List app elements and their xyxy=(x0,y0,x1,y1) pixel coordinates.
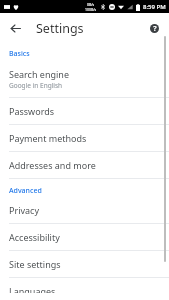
staticText: Addresses and more xyxy=(9,159,96,171)
staticText: ? xyxy=(153,24,157,33)
staticText: Site settings xyxy=(9,258,61,270)
staticText: 100B/s xyxy=(85,7,97,12)
staticText: 0B/s xyxy=(87,2,95,7)
staticText: Advanced xyxy=(9,186,42,196)
staticText: Settings xyxy=(36,20,84,37)
staticText: Accessibility xyxy=(9,231,60,243)
button[interactable]: Languages xyxy=(0,278,169,300)
button[interactable]: Search engine xyxy=(0,61,169,97)
staticText: Payment methods xyxy=(9,132,87,144)
staticText: Basics xyxy=(9,49,30,59)
staticText: Privacy xyxy=(9,204,40,216)
staticText: Passwords xyxy=(9,105,55,117)
staticText: Google in English xyxy=(9,81,63,90)
button[interactable]: Accessibility xyxy=(0,224,169,250)
button[interactable]: Back xyxy=(4,17,26,39)
button[interactable]: Privacy xyxy=(0,197,169,223)
button[interactable]: Payment methods xyxy=(0,125,169,151)
staticText: Search engine xyxy=(9,68,69,80)
staticText: 8:59 PM xyxy=(143,3,166,11)
staticText: Languages xyxy=(9,285,56,293)
button[interactable]: Addresses and more xyxy=(0,152,169,178)
button[interactable]: Passwords xyxy=(0,98,169,124)
button[interactable]: Help and feedback xyxy=(143,17,165,39)
button[interactable]: Site settings xyxy=(0,251,169,277)
